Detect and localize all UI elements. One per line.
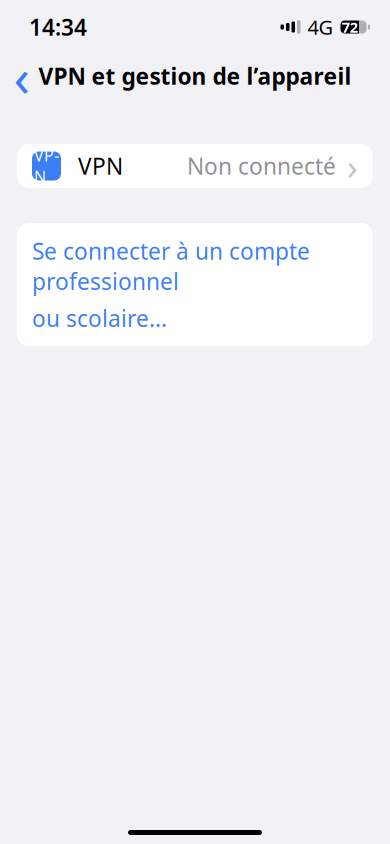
staticText: Non connecté [187, 151, 336, 181]
button[interactable]: Se connecter à un compte professionnel [17, 223, 373, 346]
staticText: Se connecter à un compte professionnel [32, 236, 310, 296]
button[interactable]: VPN [17, 144, 373, 188]
staticText: VPN [78, 151, 123, 181]
staticText: ‹ [13, 41, 30, 111]
staticText: › [347, 143, 358, 189]
button[interactable]: Retour [0, 54, 44, 98]
staticText: 72 [342, 17, 358, 37]
staticText: ou scolaire... [32, 303, 167, 333]
staticText: 4G [307, 14, 333, 40]
staticText: VPN et gestion de l’appareil [38, 61, 351, 91]
staticText: 14:34 [29, 12, 87, 42]
staticText: VPN [34, 145, 59, 187]
